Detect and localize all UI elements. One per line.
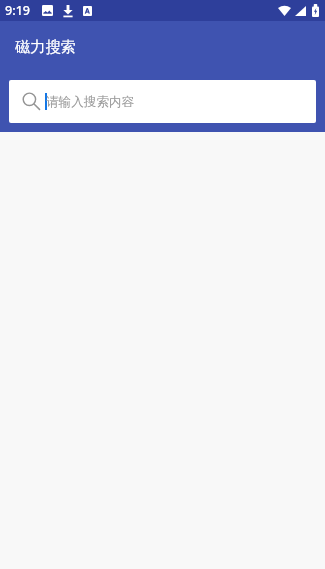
other: Wi-Fi: [278, 5, 291, 16]
other: Search: [22, 92, 41, 111]
other: Download: [63, 5, 73, 17]
staticText: 请输入搜索内容: [46, 94, 135, 110]
other: Mobile signal: [295, 6, 306, 16]
other: Translate: [83, 6, 92, 16]
staticText: 磁力搜索: [15, 37, 76, 56]
staticText: 9:19: [5, 2, 31, 19]
other: Battery charging: [312, 4, 319, 17]
button[interactable]: 搜索输入框: [9, 80, 316, 123]
other: Screenshot: [42, 5, 53, 16]
